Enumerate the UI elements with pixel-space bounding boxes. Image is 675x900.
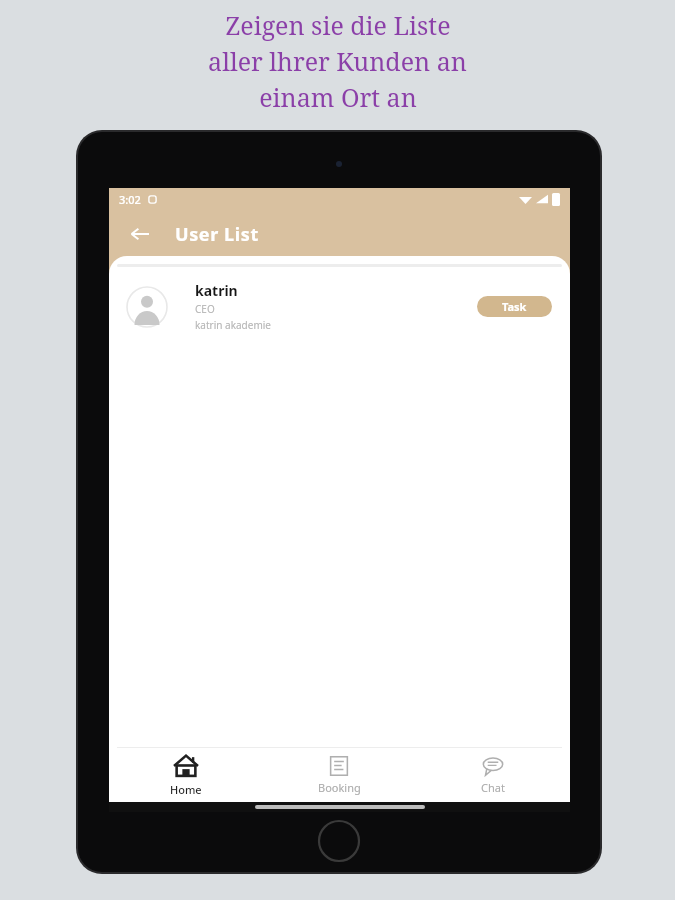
- staticText: katrin: [195, 281, 238, 300]
- staticText: katrin akademie: [195, 318, 271, 332]
- staticText: Zeigen sie die Liste: [225, 8, 451, 42]
- button[interactable]: Chat: [416, 748, 570, 802]
- staticText: 3:02: [119, 192, 141, 207]
- button[interactable]: Back: [123, 217, 157, 251]
- staticText: Chat: [481, 780, 505, 795]
- button[interactable]: Task: [477, 296, 552, 317]
- button[interactable]: Booking: [262, 748, 416, 802]
- staticText: Home: [170, 782, 202, 797]
- staticText: User List: [175, 222, 259, 247]
- button[interactable]: katrin: [109, 277, 570, 336]
- staticText: CEO: [195, 302, 215, 316]
- staticText: Booking: [318, 780, 361, 795]
- button[interactable]: Home: [109, 748, 262, 802]
- staticText: Task: [502, 299, 527, 314]
- staticText: aller lhrer Kunden an: [208, 44, 467, 78]
- staticText: einam Ort an: [259, 80, 417, 114]
